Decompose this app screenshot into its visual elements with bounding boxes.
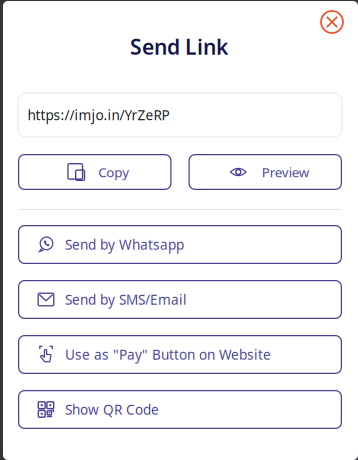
staticText: Send by Whatsapp — [65, 235, 184, 254]
button[interactable]: Use as "Pay" Button on Website — [18, 335, 342, 374]
staticText: Send by SMS/Email — [65, 290, 187, 309]
button[interactable]: Copy — [18, 154, 171, 190]
staticText: Show QR Code — [65, 400, 159, 419]
staticText: Use as "Pay" Button on Website — [65, 345, 271, 364]
button[interactable]: Show QR Code — [18, 390, 342, 429]
staticText: Send Link — [130, 32, 228, 61]
staticText: https://imjo.in/YrZeRP — [27, 106, 169, 124]
staticText: Copy — [98, 163, 129, 181]
button[interactable]: Close — [321, 0, 358, 33]
button[interactable]: Send by Whatsapp — [18, 225, 342, 264]
staticText: Preview — [262, 163, 309, 181]
button[interactable]: Send by SMS/Email — [18, 280, 342, 319]
button[interactable]: Preview — [188, 154, 342, 190]
